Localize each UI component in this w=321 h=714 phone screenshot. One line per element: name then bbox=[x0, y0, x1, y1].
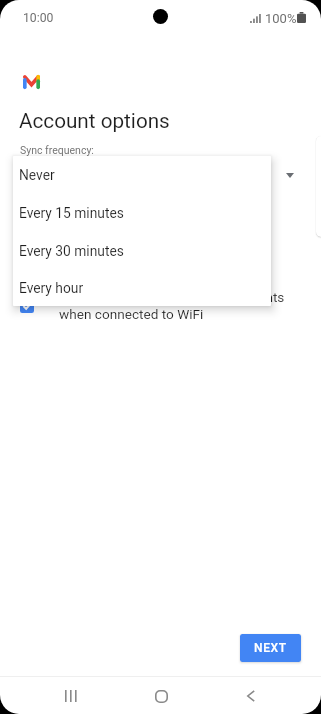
button[interactable]: Recent apps bbox=[47, 684, 95, 708]
staticText: Sync frequency: bbox=[20, 144, 94, 156]
staticText: 100% bbox=[265, 11, 297, 26]
staticText: Every 30 minutes bbox=[19, 243, 124, 259]
button[interactable]: Every 15 minutes bbox=[13, 194, 271, 232]
staticText: Never bbox=[19, 167, 55, 183]
button[interactable]: Every 30 minutes bbox=[13, 232, 271, 270]
button[interactable]: NEXT bbox=[240, 634, 301, 662]
staticText: NEXT bbox=[254, 641, 287, 655]
button[interactable]: Never bbox=[13, 156, 271, 194]
staticText: Every 15 minutes bbox=[19, 205, 124, 221]
button[interactable]: Home bbox=[137, 684, 185, 708]
button[interactable]: Every hour bbox=[13, 270, 271, 306]
staticText: Automatically download attachments when … bbox=[59, 289, 285, 322]
button[interactable]: Automatically download attachments when … bbox=[20, 289, 285, 322]
staticText: Account options bbox=[19, 109, 170, 133]
staticText: 10:00 bbox=[23, 11, 54, 25]
staticText: Every hour bbox=[19, 280, 84, 296]
button[interactable]: Back bbox=[227, 684, 275, 708]
